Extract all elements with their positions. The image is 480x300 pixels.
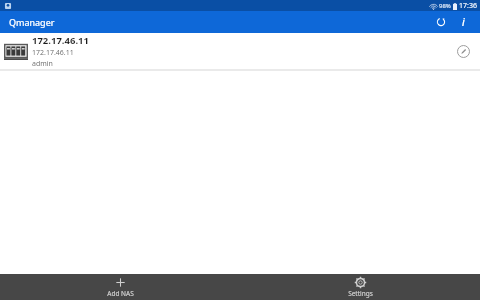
staticText: Qmanager [9, 16, 55, 28]
button[interactable]: Information [452, 11, 474, 33]
staticText: admin [32, 59, 53, 69]
button[interactable]: Add NAS [0, 274, 240, 300]
staticText: 172.17.46.11 [32, 34, 89, 47]
button[interactable]: Settings [240, 274, 480, 300]
button[interactable]: Edit NAS [450, 38, 476, 64]
staticText: 172.17.46.11 [32, 48, 74, 58]
staticText: Add NAS [107, 289, 134, 298]
staticText: 98% [439, 2, 451, 10]
button[interactable]: 172.17.46.11 [0, 33, 480, 71]
staticText: Settings [348, 289, 373, 298]
staticText: 17:36 [459, 1, 477, 11]
button[interactable]: Refresh [430, 11, 452, 33]
staticText: i [462, 15, 465, 29]
